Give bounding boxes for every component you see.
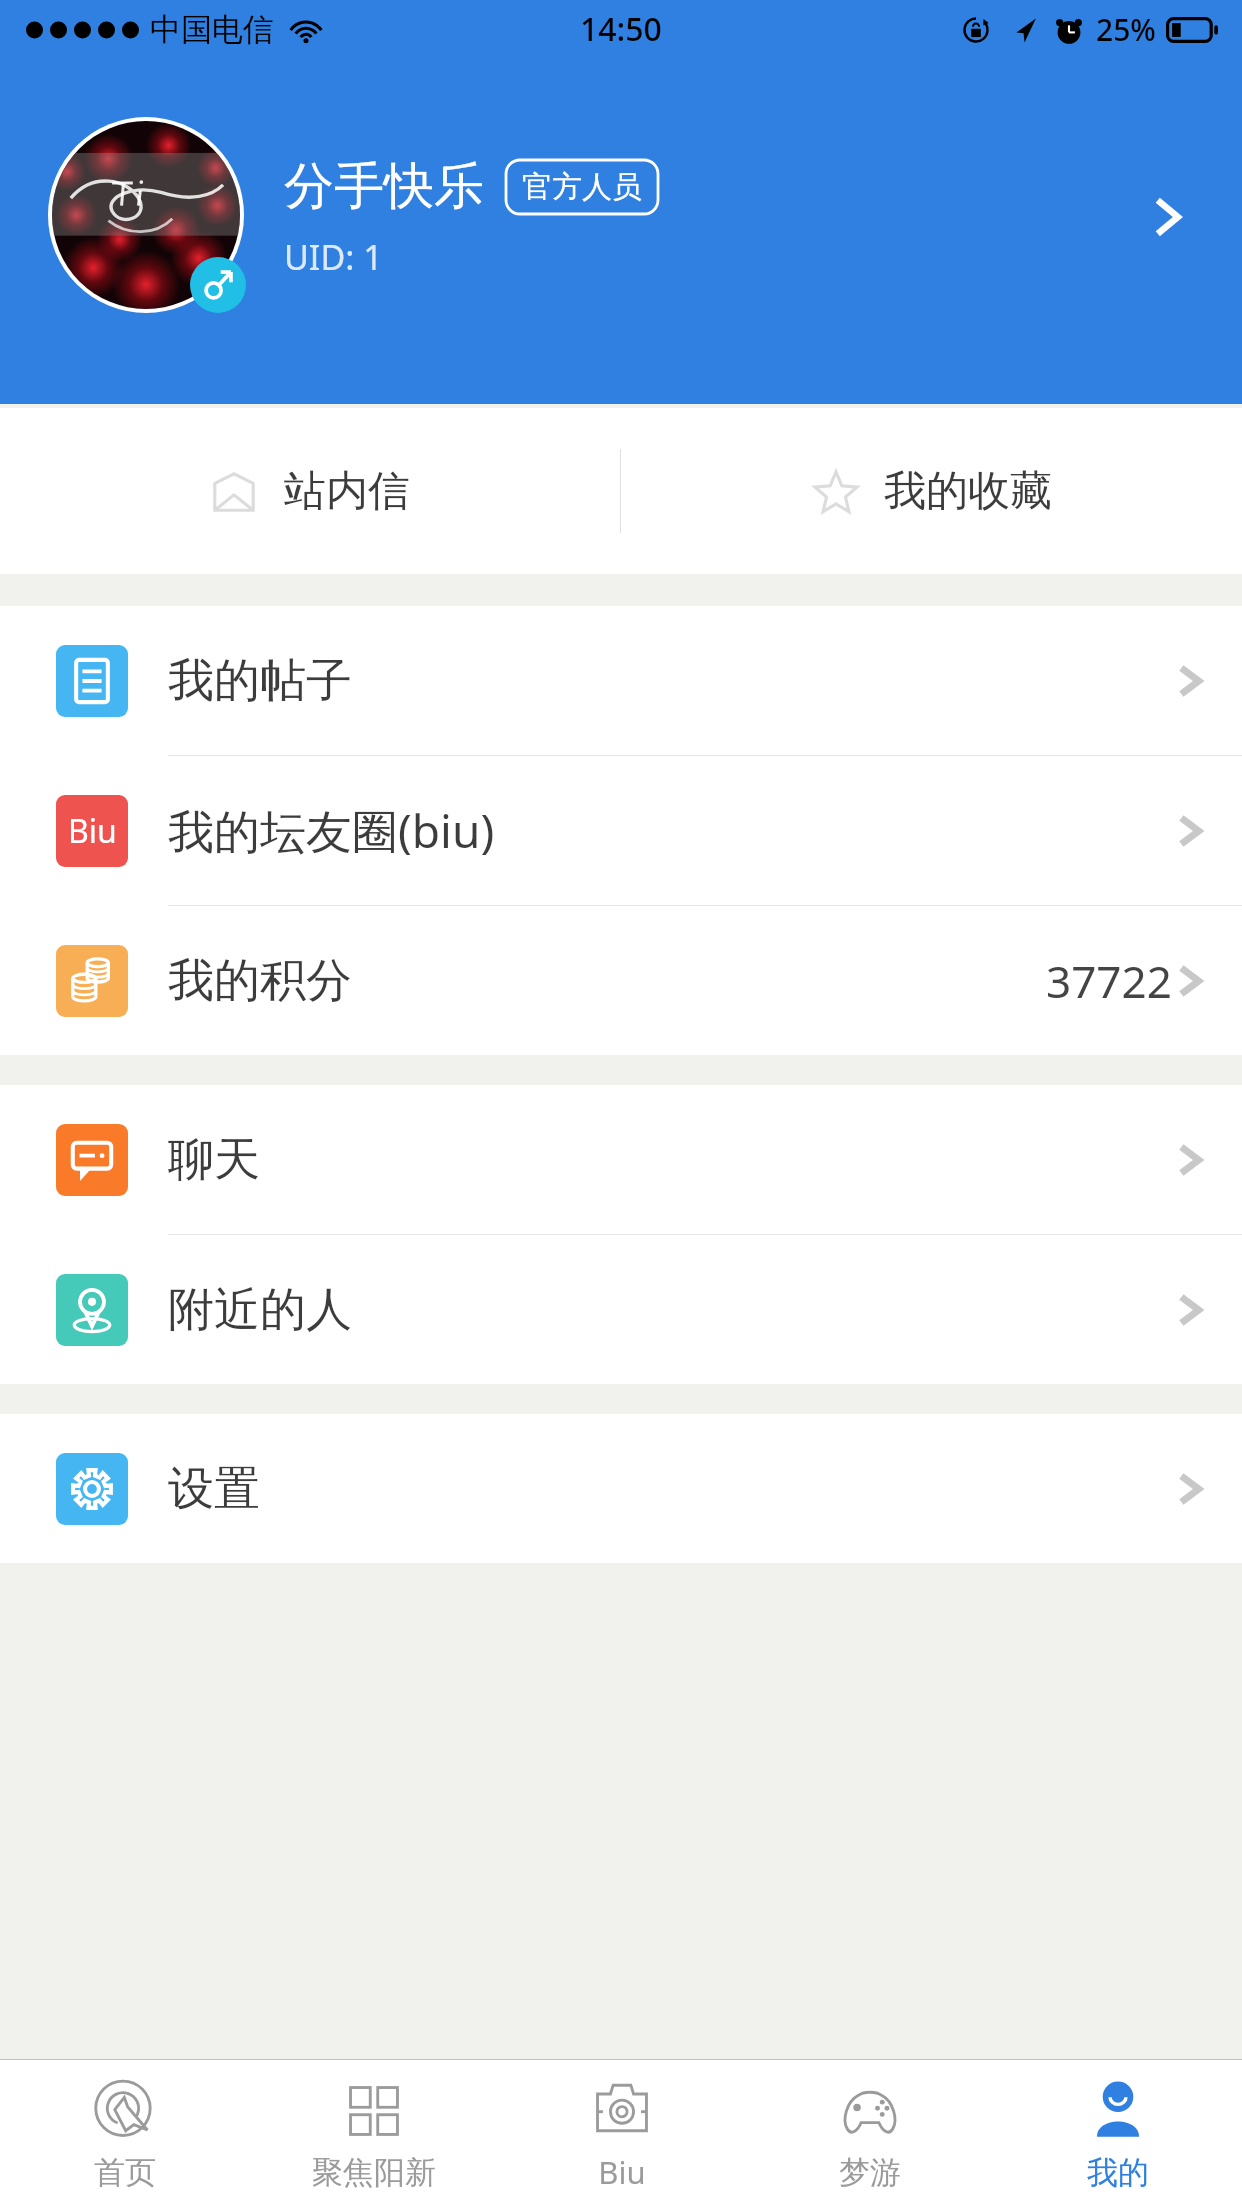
staticText: 我的帖子	[168, 652, 352, 710]
button[interactable]: Biu	[0, 756, 1242, 905]
button[interactable]: 首页	[0, 2060, 249, 2208]
staticText: Biu	[598, 2151, 646, 2193]
staticText: 我的积分	[168, 952, 352, 1010]
button[interactable]: 我的帖子	[0, 606, 1242, 755]
staticText: 中国电信	[150, 10, 274, 49]
staticText: 25%	[1096, 9, 1156, 50]
staticText: 分手快乐	[284, 155, 484, 218]
staticText: UID: 1	[284, 234, 383, 280]
button[interactable]: Biu	[498, 2060, 746, 2208]
button[interactable]: 站内信	[0, 408, 620, 574]
button[interactable]: 设置	[0, 1414, 1242, 1563]
staticText: 聊天	[168, 1131, 260, 1189]
staticText: 14:50	[580, 7, 662, 51]
button[interactable]: 分手快乐	[0, 112, 1242, 322]
staticText: 站内信	[284, 465, 410, 518]
staticText: 我的收藏	[884, 465, 1052, 518]
button[interactable]: 我的收藏	[621, 408, 1242, 574]
button[interactable]: 附近的人	[0, 1235, 1242, 1384]
button[interactable]: 聚焦阳新	[249, 2060, 498, 2208]
staticText: 我的坛友圈(biu)	[168, 799, 495, 862]
staticText: 37722	[1046, 951, 1172, 1011]
staticText: Biu	[68, 809, 117, 853]
staticText: 首页	[94, 2153, 156, 2192]
other: Open profile	[1132, 182, 1202, 252]
staticText: 附近的人	[168, 1281, 352, 1339]
staticText: 设置	[168, 1460, 260, 1518]
staticText: 官方人员	[522, 168, 642, 206]
button[interactable]: 我的	[994, 2060, 1242, 2208]
button[interactable]: 梦游	[746, 2060, 994, 2208]
button[interactable]: 我的积分	[0, 906, 1242, 1055]
button[interactable]: 聊天	[0, 1085, 1242, 1234]
staticText: 梦游	[839, 2153, 901, 2192]
staticText: 聚焦阳新	[312, 2153, 436, 2192]
staticText: 我的	[1087, 2153, 1149, 2192]
